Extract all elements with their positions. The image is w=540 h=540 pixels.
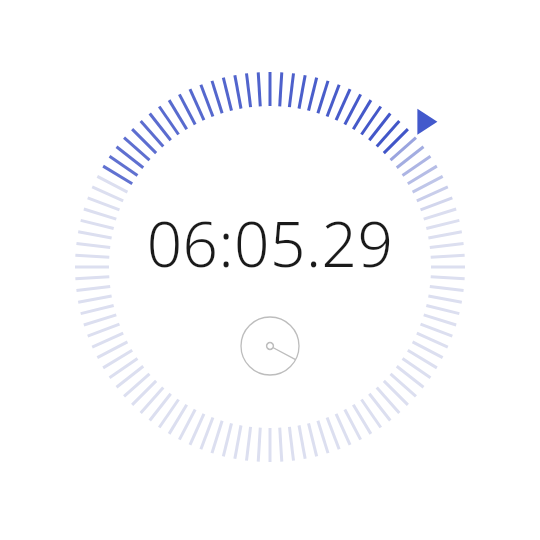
button[interactable]: Stopwatch dial, 06:05.29 — [0, 0, 540, 540]
